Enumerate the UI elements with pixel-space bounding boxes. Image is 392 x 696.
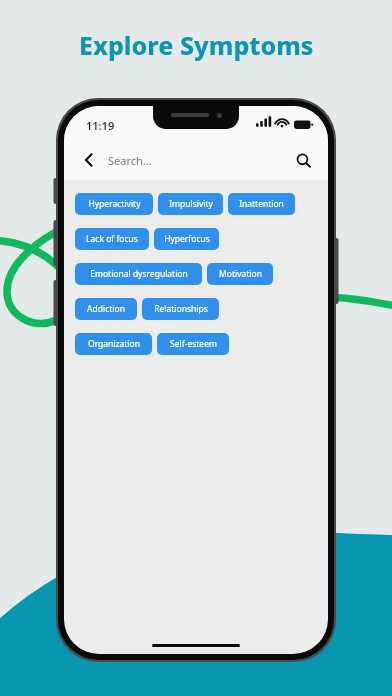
button[interactable]: Impulsivity bbox=[158, 193, 223, 215]
button[interactable]: Relationships bbox=[142, 298, 219, 320]
button[interactable]: Addiction bbox=[75, 298, 137, 320]
button[interactable]: Search... bbox=[108, 140, 290, 180]
staticText: Search... bbox=[108, 153, 152, 168]
button[interactable]: Self-esteem bbox=[157, 333, 229, 355]
button[interactable]: Emotional dysregulation bbox=[75, 263, 202, 285]
staticText: Hyperfocus bbox=[164, 233, 210, 245]
button[interactable]: Lack of focus bbox=[75, 228, 149, 250]
button[interactable]: Search bbox=[290, 147, 316, 173]
button[interactable]: Hyperactivity bbox=[75, 193, 153, 215]
button[interactable]: Motivation bbox=[207, 263, 273, 285]
button[interactable]: Back bbox=[76, 147, 102, 173]
staticText: Impulsivity bbox=[169, 198, 213, 210]
staticText: Lack of focus bbox=[86, 233, 138, 245]
staticText: Self-esteem bbox=[170, 338, 217, 350]
staticText: Addiction bbox=[87, 303, 125, 315]
staticText: Organization bbox=[88, 338, 140, 350]
button[interactable]: Hyperfocus bbox=[154, 228, 219, 250]
button[interactable]: Organization bbox=[75, 333, 152, 355]
staticText: Emotional dysregulation bbox=[90, 268, 188, 280]
button[interactable]: Inattention bbox=[228, 193, 295, 215]
staticText: Inattention bbox=[239, 198, 284, 210]
staticText: Hyperactivity bbox=[88, 198, 141, 210]
staticText: 11:19 bbox=[86, 118, 115, 133]
staticText: Relationships bbox=[154, 303, 208, 315]
staticText: Explore Symptoms bbox=[79, 28, 314, 62]
staticText: Motivation bbox=[219, 268, 262, 280]
